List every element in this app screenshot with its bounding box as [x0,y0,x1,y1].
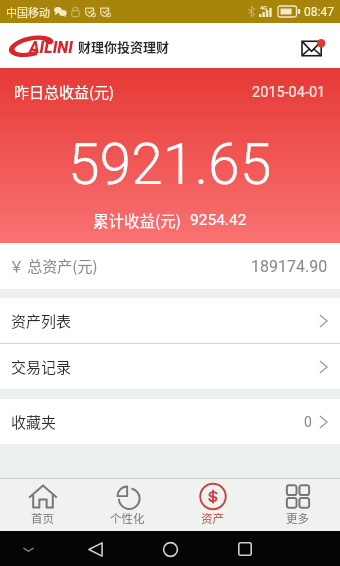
staticText: 资产列表 [11,310,72,332]
button[interactable]: 资产列表 [0,298,340,343]
staticText: 资产 [201,510,224,527]
button[interactable]: 更多 [255,479,340,531]
staticText: 交易记录 [11,356,72,378]
button[interactable]: Hide navigation bar [12,533,44,565]
staticText: 08:47 [304,5,334,19]
button[interactable]: Messages [299,31,329,61]
staticText: AILINI [29,38,73,57]
staticText: 189174.90 [251,257,328,276]
staticText: 5921.65 [68,131,272,198]
staticText: 收藏夹 [11,411,57,433]
staticText: 更多 [286,510,309,527]
staticText: 2015-04-01 [252,84,326,101]
button[interactable]: 资产 [170,479,255,531]
button[interactable]: 首页 [0,479,85,531]
button[interactable]: 交易记录 [0,344,340,389]
button[interactable]: Back [79,532,113,566]
staticText: 4G [260,4,268,11]
button[interactable]: 个性化 [85,479,170,531]
staticText: 0 [304,414,312,430]
staticText: 累计收益(元) [93,209,181,231]
button[interactable]: ￥ 总资产(元) [0,243,340,289]
staticText: 个性化 [110,510,145,527]
staticText: 昨日总收益(元) [14,81,115,103]
staticText: ￥ 总资产(元) [9,255,98,277]
staticText: 9254.42 [190,211,247,229]
button[interactable]: Recent apps [228,532,262,566]
staticText: 财理你投资理财 [78,37,170,56]
staticText: 中国移动 [6,4,50,20]
button[interactable]: 收藏夹 [0,399,340,444]
staticText: 首页 [31,510,54,527]
button[interactable]: Home [153,532,187,566]
